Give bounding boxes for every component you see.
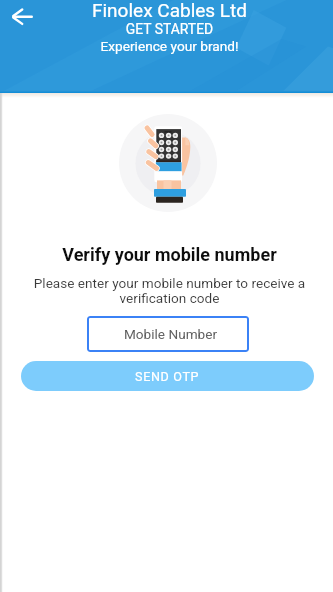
staticText: Verify your mobile number <box>3 244 333 265</box>
staticText: SEND OTP <box>135 369 200 384</box>
staticText: Please enter your mobile number to recei… <box>3 275 333 307</box>
staticText: GET STARTED <box>3 21 333 37</box>
button[interactable]: Mobile Number <box>87 316 249 352</box>
staticText: Finolex Cables Ltd <box>3 0 333 21</box>
staticText: Mobile Number <box>124 326 218 342</box>
staticText: Experience your brand! <box>3 38 333 54</box>
button[interactable]: SEND OTP <box>21 361 314 391</box>
button[interactable]: Back <box>5 2 35 32</box>
